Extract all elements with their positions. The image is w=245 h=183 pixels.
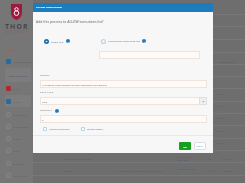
staticText: eSignature: [13, 162, 26, 165]
staticText: Simple bylaws: [13, 125, 29, 128]
staticText: Path: [42, 100, 48, 103]
staticText: Simple rules: [13, 113, 27, 116]
button[interactable]: Simple rules: [0, 110, 33, 119]
staticText: BLOCK: [13, 87, 21, 90]
staticText: Add this process to ALLOW executions lis…: [36, 19, 104, 24]
staticText: Custom policy global allow rule: [108, 40, 140, 43]
staticText: thorSvc: [217, 117, 225, 120]
staticText: SbieSvc: [64, 170, 73, 173]
staticText: Microsoft Corp (SECURE): [178, 156, 194, 162]
staticText: thorSvc: [217, 130, 225, 133]
button[interactable]: eSignature: [0, 159, 33, 168]
other: Info: [55, 109, 59, 113]
button[interactable]: [99, 51, 200, 59]
staticText: matching filters: [218, 60, 236, 63]
button[interactable]: Global rule: [44, 38, 70, 44]
staticText: thorSvc: [217, 105, 225, 108]
staticText: Cancel: [196, 145, 204, 148]
staticText: TARGET: [40, 74, 50, 77]
button[interactable]: PROCESS RULES: [5, 68, 31, 82]
staticText: THOR: [5, 22, 29, 32]
other: Info: [142, 39, 146, 43]
button[interactable]: Tasks: [0, 146, 33, 155]
staticText: Yes: [183, 145, 187, 148]
staticText: Architecture: [13, 174, 27, 177]
button[interactable]: C:\Program Files\Google\Chrome\Applicati…: [40, 80, 207, 88]
other: Info: [66, 39, 70, 43]
staticText: Allow auto elevation: [49, 128, 70, 131]
staticText: Audit: [38, 4, 47, 8]
staticText: ALLOW: [13, 100, 22, 103]
button[interactable]: Architecture: [0, 171, 33, 180]
button[interactable]: Cancel: [194, 142, 206, 150]
staticText: PROCESS RULES: [9, 74, 28, 77]
button[interactable]: Allow auto elevation: [43, 127, 70, 131]
staticText: FILTERS: [6, 49, 16, 53]
staticText: All intercepted ap: [13, 60, 33, 63]
staticText: 7.0.0.30: [207, 170, 216, 173]
staticText: thorSvc: [217, 93, 225, 96]
staticText: 0: [42, 118, 44, 121]
button[interactable]: Open rule type dropdown: [199, 97, 207, 105]
staticText: Include spawns: [87, 128, 103, 131]
button[interactable]: Simple bylaws: [0, 122, 33, 131]
staticText: C:\WThor: [222, 158, 232, 161]
staticText: Ronson Machine S: [178, 168, 196, 174]
staticText: Alarms: [13, 137, 21, 140]
staticText: ALLOW EXECUTION: [36, 6, 63, 9]
staticText: Software Integrity Service: [64, 158, 92, 161]
staticText: PRIORITY: [40, 109, 53, 112]
staticText: C:\Program Files\Google\Chrome\Applicati…: [42, 83, 107, 86]
staticText: i: [144, 40, 145, 43]
button[interactable]: 0: [40, 115, 207, 123]
button[interactable]: All intercepted ap: [0, 57, 33, 66]
button[interactable]: Custom policy global allow rule: [101, 38, 146, 44]
button[interactable]: BLOCK: [0, 84, 33, 93]
staticText: Allow secure-SharePoint Program and mi: [118, 170, 163, 173]
staticText: Global rule: [51, 40, 64, 43]
button[interactable]: Yes: [179, 142, 191, 150]
staticText: i: [68, 40, 69, 43]
staticText: APPCONTROL: [5, 30, 29, 34]
staticText: RULE TYPE: [40, 91, 54, 94]
staticText: i: [57, 110, 58, 113]
staticText: Tasks: [13, 149, 20, 152]
button[interactable]: Include spawns: [81, 127, 103, 131]
button[interactable]: Alarms: [0, 134, 33, 143]
staticText: thorSvc: [217, 142, 225, 145]
button[interactable]: ALLOW: [0, 97, 33, 106]
staticText: 2: [46, 170, 48, 173]
staticText: 40.0: [207, 158, 212, 161]
staticText: c:\wthor\t: [222, 170, 233, 173]
